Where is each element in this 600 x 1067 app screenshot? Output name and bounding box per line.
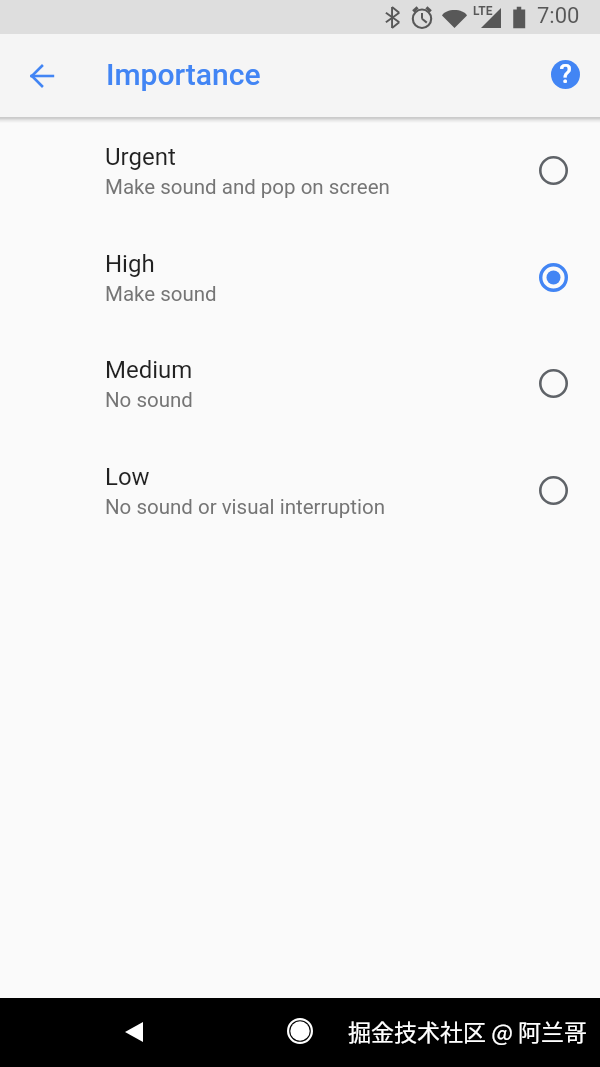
- button[interactable]: Navigate up: [18, 52, 66, 100]
- staticText: ?: [559, 59, 572, 89]
- staticText: Urgent: [105, 143, 176, 171]
- toggle[interactable]: High: [0, 238, 600, 344]
- button[interactable]: Help: [541, 50, 589, 98]
- staticText: Medium: [105, 356, 193, 384]
- staticText: Make sound and pop on screen: [105, 175, 390, 199]
- staticText: No sound or visual interruption: [105, 495, 385, 519]
- button[interactable]: Back: [110, 1008, 158, 1056]
- staticText: Low: [105, 463, 150, 491]
- staticText: Make sound: [105, 282, 217, 306]
- toggle[interactable]: Medium: [0, 344, 600, 450]
- staticText: High: [105, 250, 155, 278]
- staticText: 7:00: [537, 3, 580, 29]
- toggle[interactable]: Urgent: [0, 131, 600, 237]
- staticText: LTE: [473, 4, 493, 18]
- staticText: Importance: [106, 57, 261, 92]
- toggle[interactable]: Low: [0, 451, 600, 557]
- staticText: 掘金技术社区 @ 阿兰哥: [348, 1014, 588, 1047]
- button[interactable]: Home: [276, 1007, 324, 1055]
- staticText: No sound: [105, 388, 193, 412]
